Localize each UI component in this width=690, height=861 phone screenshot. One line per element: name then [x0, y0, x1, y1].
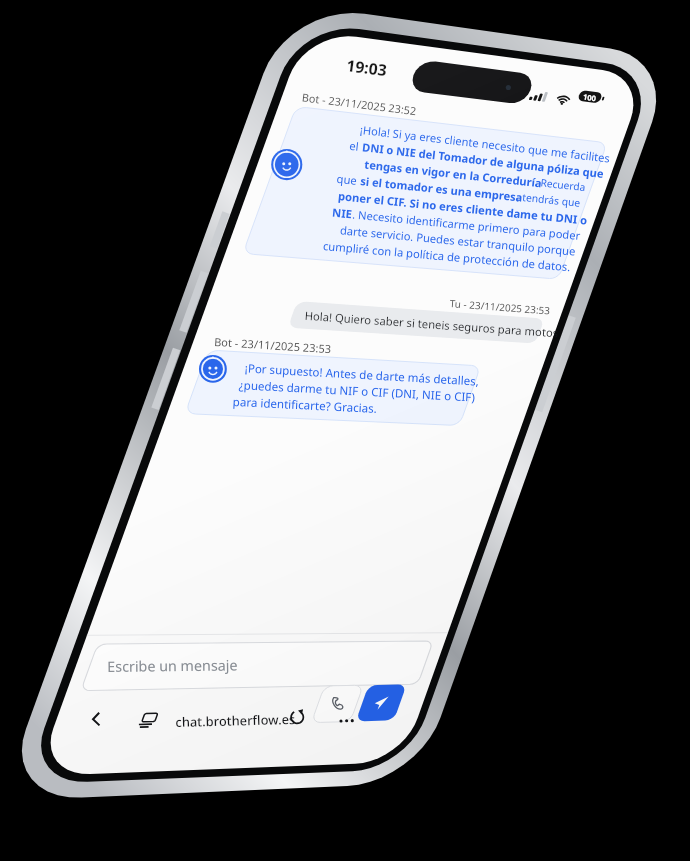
- button[interactable]: [0, 0, 690, 861]
